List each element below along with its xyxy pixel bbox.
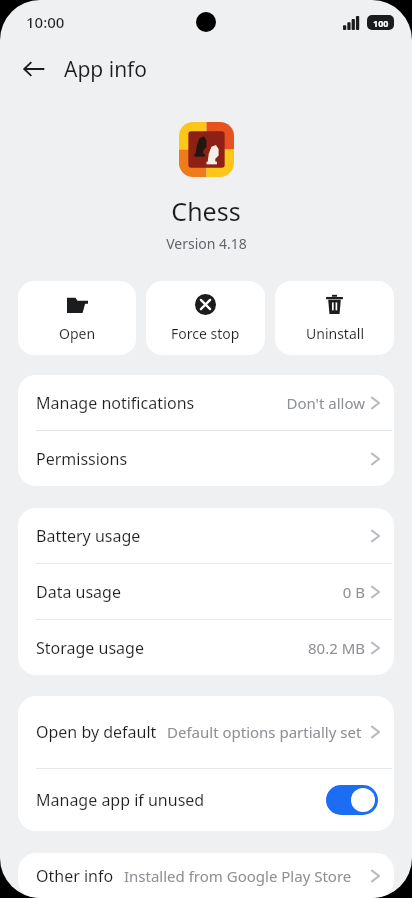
button[interactable]: Storage usage — [18, 620, 394, 675]
button[interactable]: Other info — [18, 853, 394, 898]
button[interactable]: Manage app if unused toggle — [326, 785, 378, 815]
staticText: Manage notifications — [36, 392, 195, 414]
staticText: Other info — [36, 865, 114, 887]
button[interactable]: Open — [18, 281, 136, 355]
button[interactable]: Open by default — [18, 696, 394, 768]
staticText: Installed from Google Play Store — [124, 866, 365, 886]
staticText: Chess — [171, 194, 241, 228]
button[interactable]: Manage app if unused — [18, 769, 394, 831]
staticText: Manage app if unused — [36, 789, 205, 811]
staticText: App info — [64, 55, 148, 84]
staticText: Open by default — [36, 721, 157, 743]
staticText: Default options partially set — [167, 722, 365, 742]
staticText: Data usage — [36, 581, 121, 603]
button[interactable]: Force stop — [146, 281, 265, 355]
staticText: 10:00 — [26, 12, 65, 32]
staticText: Permissions — [36, 448, 128, 470]
button[interactable]: Data usage — [18, 564, 394, 619]
staticText: 80.2 MB — [307, 638, 365, 658]
staticText: Version 4.18 — [166, 234, 247, 253]
staticText: 0 B — [342, 582, 365, 602]
button[interactable]: Battery usage — [18, 508, 394, 563]
button[interactable]: Back — [10, 45, 58, 93]
button[interactable]: Manage notifications — [18, 375, 394, 430]
button[interactable]: Permissions — [18, 431, 394, 486]
staticText: Don't allow — [286, 393, 365, 413]
button[interactable]: Uninstall — [275, 281, 394, 355]
staticText: Storage usage — [36, 637, 144, 659]
staticText: Open — [59, 324, 96, 343]
staticText: Uninstall — [306, 324, 364, 343]
staticText: Force stop — [171, 324, 240, 343]
staticText: Battery usage — [36, 525, 141, 547]
staticText: 100 — [373, 17, 389, 29]
